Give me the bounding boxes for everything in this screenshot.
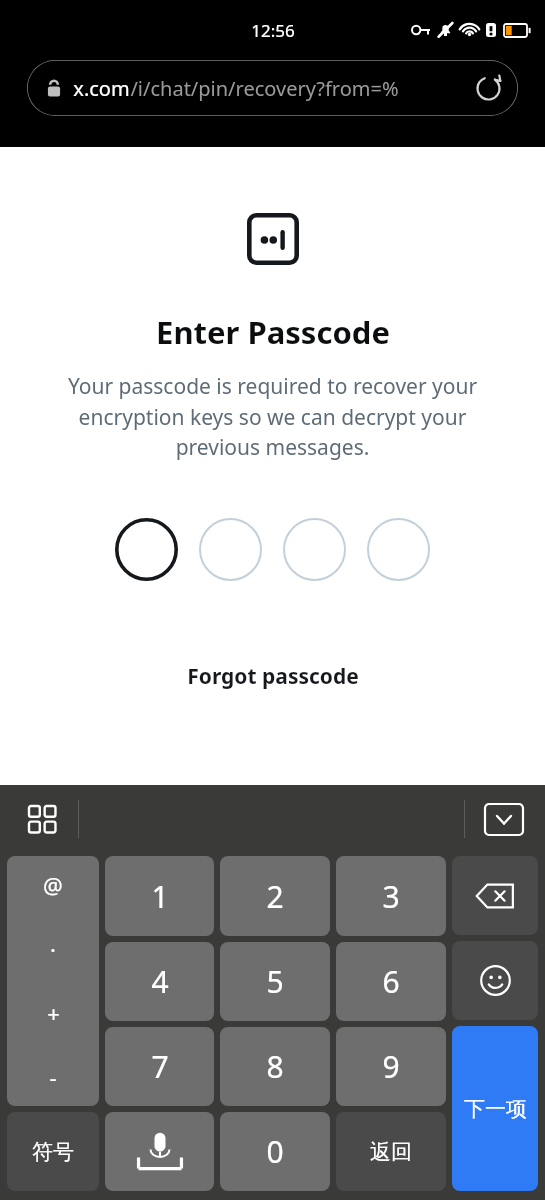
button[interactable]: Backspace	[452, 856, 538, 935]
button[interactable]: x.com	[27, 60, 518, 116]
button[interactable]: 返回	[336, 1112, 446, 1191]
staticText: 6	[382, 961, 400, 1002]
button[interactable]: Space	[105, 1112, 214, 1191]
staticText: 12:56	[251, 19, 295, 42]
staticText: ·	[50, 934, 56, 964]
button[interactable]: Keyboard layouts	[18, 795, 66, 843]
button[interactable]: @	[7, 856, 99, 1106]
staticText: /i/chat/pin/recovery?from=%	[130, 75, 399, 102]
button[interactable]: Hide keyboard	[481, 800, 527, 838]
button[interactable]: 0	[220, 1112, 330, 1191]
staticText: 5	[266, 961, 284, 1002]
staticText: 3	[382, 876, 400, 917]
staticText: @	[43, 870, 63, 900]
staticText: 4	[151, 961, 169, 1002]
button[interactable]: 4	[105, 942, 214, 1021]
staticText: 符号	[32, 1139, 74, 1165]
staticText: Enter Passcode	[156, 311, 390, 353]
button[interactable]: 2	[220, 856, 330, 936]
staticText: +	[47, 998, 60, 1028]
button[interactable]: 符号	[7, 1112, 99, 1191]
staticText: 下一项	[464, 1096, 527, 1122]
staticText: Forgot passcode	[187, 662, 359, 691]
staticText: 返回	[370, 1139, 412, 1165]
staticText: 7	[151, 1046, 169, 1087]
button[interactable]: 9	[336, 1027, 446, 1106]
button[interactable]: 1	[105, 856, 214, 936]
staticText: Your passcode is required to recover you…	[34, 372, 511, 461]
button[interactable]: 7	[105, 1027, 214, 1106]
staticText: 9	[382, 1046, 400, 1087]
button[interactable]: Emoji	[452, 941, 538, 1020]
staticText: 2	[266, 876, 284, 917]
button[interactable]: 下一项	[452, 1026, 538, 1191]
staticText: x.com	[73, 75, 130, 102]
button[interactable]: Forgot passcode	[179, 657, 367, 696]
button[interactable]: 3	[336, 856, 446, 936]
staticText: -	[49, 1062, 57, 1092]
button[interactable]: 6	[336, 942, 446, 1021]
button[interactable]: 8	[220, 1027, 330, 1106]
button[interactable]: 5	[220, 942, 330, 1021]
staticText: 1	[151, 876, 169, 917]
button[interactable]: Reload	[470, 70, 506, 106]
staticText: 8	[266, 1046, 284, 1087]
staticText: 0	[266, 1131, 284, 1172]
